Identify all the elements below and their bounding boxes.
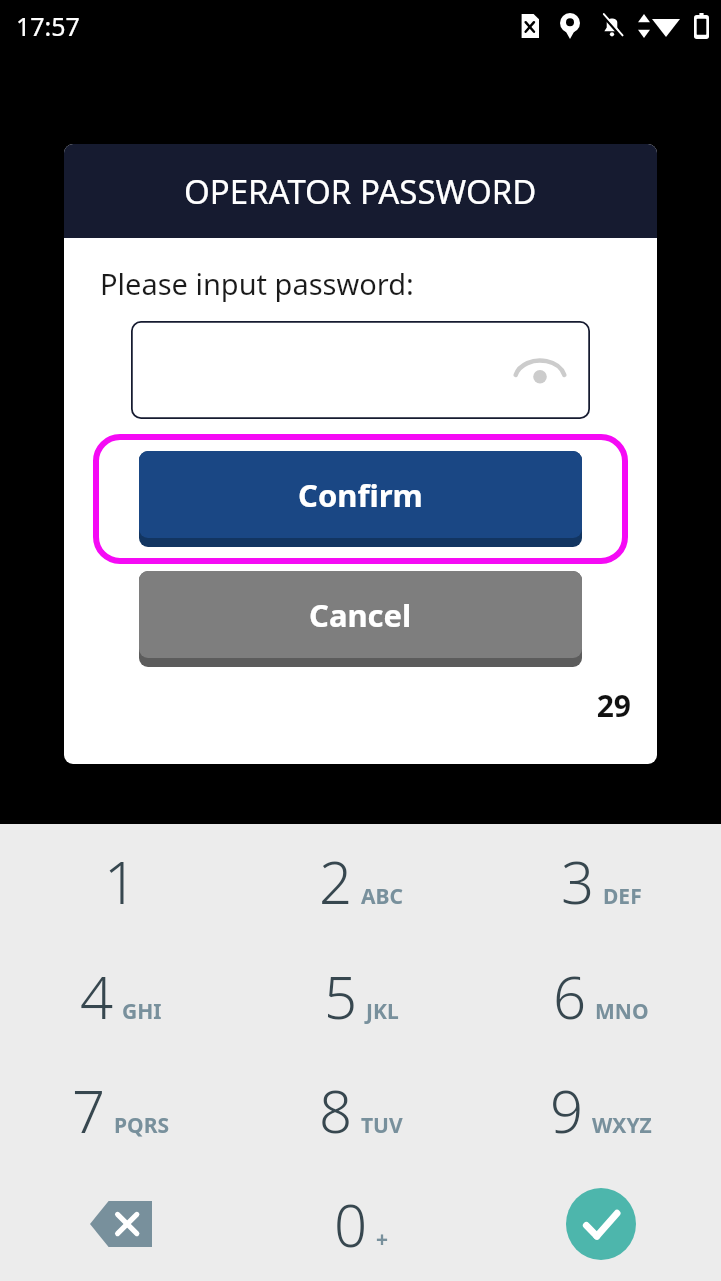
button[interactable]: Show password xyxy=(512,353,568,387)
button[interactable]: Confirm xyxy=(139,451,582,547)
staticText: 17:57 xyxy=(16,9,80,43)
staticText: MNO xyxy=(595,997,649,1026)
button[interactable]: 0 xyxy=(241,1167,481,1281)
button[interactable]: 6 xyxy=(481,939,721,1053)
button[interactable]: 3 xyxy=(481,824,721,939)
button[interactable]: 4 xyxy=(0,939,241,1053)
staticText: 1 xyxy=(104,842,138,921)
staticText: + xyxy=(376,1225,389,1254)
staticText: JKL xyxy=(366,997,399,1026)
button[interactable]: Cancel xyxy=(139,571,582,667)
button[interactable]: Confirm xyxy=(96,437,625,561)
button[interactable]: Confirm entry xyxy=(481,1167,721,1281)
button[interactable]: Backspace xyxy=(0,1167,241,1281)
staticText: 7 xyxy=(72,1071,106,1150)
staticText: Confirm xyxy=(298,474,423,516)
staticText: Please input password: xyxy=(100,264,414,303)
button[interactable]: 8 xyxy=(241,1053,481,1167)
staticText: OPERATOR PASSWORD xyxy=(184,169,537,214)
button[interactable]: 2 xyxy=(241,824,481,939)
staticText: 0 xyxy=(334,1185,368,1264)
staticText: TUV xyxy=(361,1111,403,1140)
staticText: 29 xyxy=(64,685,631,726)
staticText: ABC xyxy=(361,882,403,911)
staticText: PQRS xyxy=(114,1111,169,1140)
button[interactable]: 5 xyxy=(241,939,481,1053)
button[interactable]: 7 xyxy=(0,1053,241,1167)
button[interactable]: 9 xyxy=(481,1053,721,1167)
staticText: 9 xyxy=(550,1071,584,1150)
staticText: 5 xyxy=(324,957,358,1036)
staticText: Cancel xyxy=(309,594,412,636)
staticText: 6 xyxy=(553,957,587,1036)
staticText: 8 xyxy=(319,1071,353,1150)
staticText: DEF xyxy=(603,882,642,911)
button[interactable]: Show password xyxy=(131,321,590,419)
button[interactable]: 1 xyxy=(0,824,241,939)
staticText: GHI xyxy=(122,997,162,1026)
staticText: 3 xyxy=(561,842,595,921)
staticText: WXYZ xyxy=(592,1111,652,1140)
staticText: 2 xyxy=(319,842,353,921)
staticText: 4 xyxy=(80,957,114,1036)
